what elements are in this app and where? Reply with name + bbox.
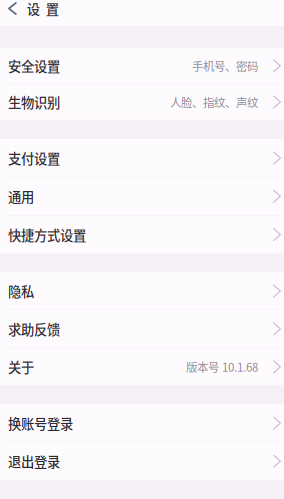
button[interactable]: 换账号登录	[0, 404, 284, 442]
staticText: 关于	[8, 357, 34, 376]
staticText: 设置	[27, 0, 59, 18]
button[interactable]: 支付设置	[0, 139, 284, 177]
staticText: 手机号、密码	[192, 57, 258, 74]
staticText: 快捷方式设置	[8, 225, 86, 244]
staticText: 人脸、指纹、声纹	[170, 94, 258, 110]
button[interactable]: 退出登录	[0, 442, 284, 480]
staticText: 求助反馈	[8, 319, 60, 338]
staticText: 支付设置	[8, 148, 60, 168]
staticText: 退出登录	[8, 451, 60, 471]
staticText: 安全设置	[8, 56, 60, 75]
staticText: 通用	[8, 187, 34, 206]
staticText: 隐私	[8, 281, 34, 301]
staticText: 版本号 10.1.68	[186, 358, 258, 375]
button[interactable]: Back	[0, 2, 27, 15]
button[interactable]: 快捷方式设置	[0, 216, 284, 253]
button[interactable]: 关于	[0, 348, 284, 385]
button[interactable]: 通用	[0, 177, 284, 215]
button[interactable]: 安全设置	[0, 48, 284, 83]
button[interactable]: 隐私	[0, 272, 284, 310]
staticText: 生物识别	[8, 92, 60, 112]
staticText: 换账号登录	[8, 413, 73, 433]
button[interactable]: 求助反馈	[0, 310, 284, 347]
button[interactable]: 生物识别	[0, 84, 284, 120]
